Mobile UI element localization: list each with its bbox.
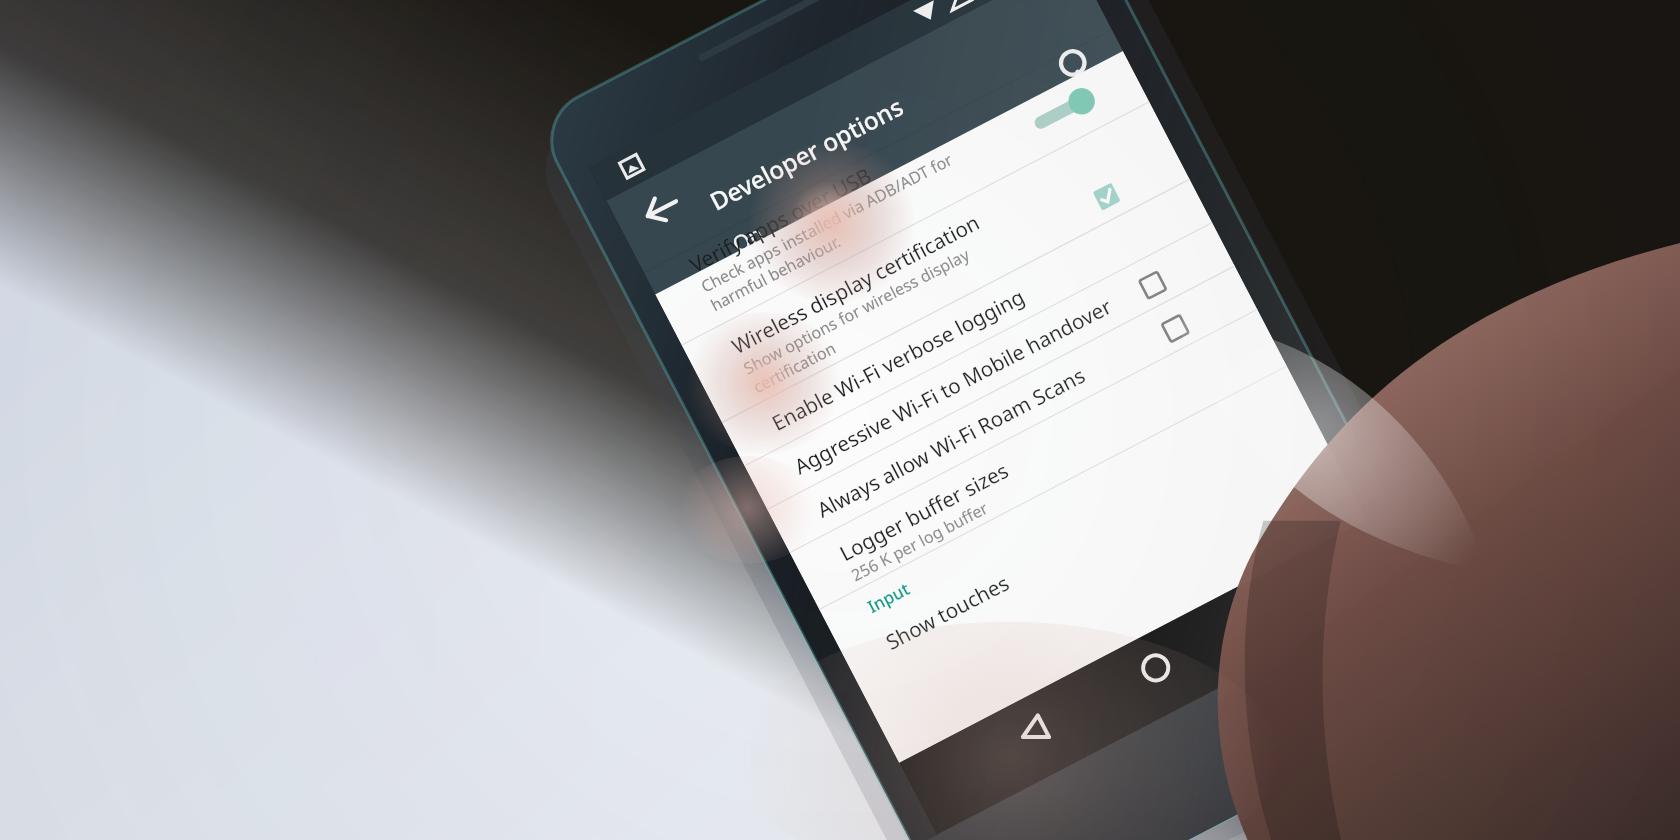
button[interactable]: Back: [0, 0, 1680, 840]
button[interactable]: Back: [555, 38, 617, 100]
button[interactable]: Back: [408, 272, 460, 324]
button[interactable]: [480, 120, 670, 182]
button[interactable]: [420, 300, 990, 420]
button[interactable]: [400, 400, 960, 530]
button[interactable]: Search: [690, 122, 748, 180]
button[interactable]: Home: [443, 292, 495, 344]
